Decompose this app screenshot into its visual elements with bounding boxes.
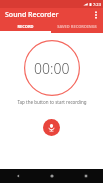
- staticText: 7:23: [93, 2, 101, 7]
- button[interactable]: Recent apps: [69, 169, 103, 183]
- button[interactable]: Start recording: [43, 119, 60, 136]
- button[interactable]: RECORD: [0, 22, 51, 31]
- button[interactable]: More options: [89, 8, 103, 22]
- button[interactable]: SAVED RECORDINGS: [51, 22, 103, 31]
- staticText: SAVED RECORDINGS: [57, 24, 97, 29]
- staticText: 00:00: [34, 59, 70, 78]
- button[interactable]: Home: [35, 169, 69, 183]
- button[interactable]: Back: [0, 169, 35, 183]
- staticText: Sound Recorder: [5, 10, 59, 20]
- staticText: Tap the button to start recording: [17, 99, 87, 105]
- staticText: RECORD: [17, 24, 34, 29]
